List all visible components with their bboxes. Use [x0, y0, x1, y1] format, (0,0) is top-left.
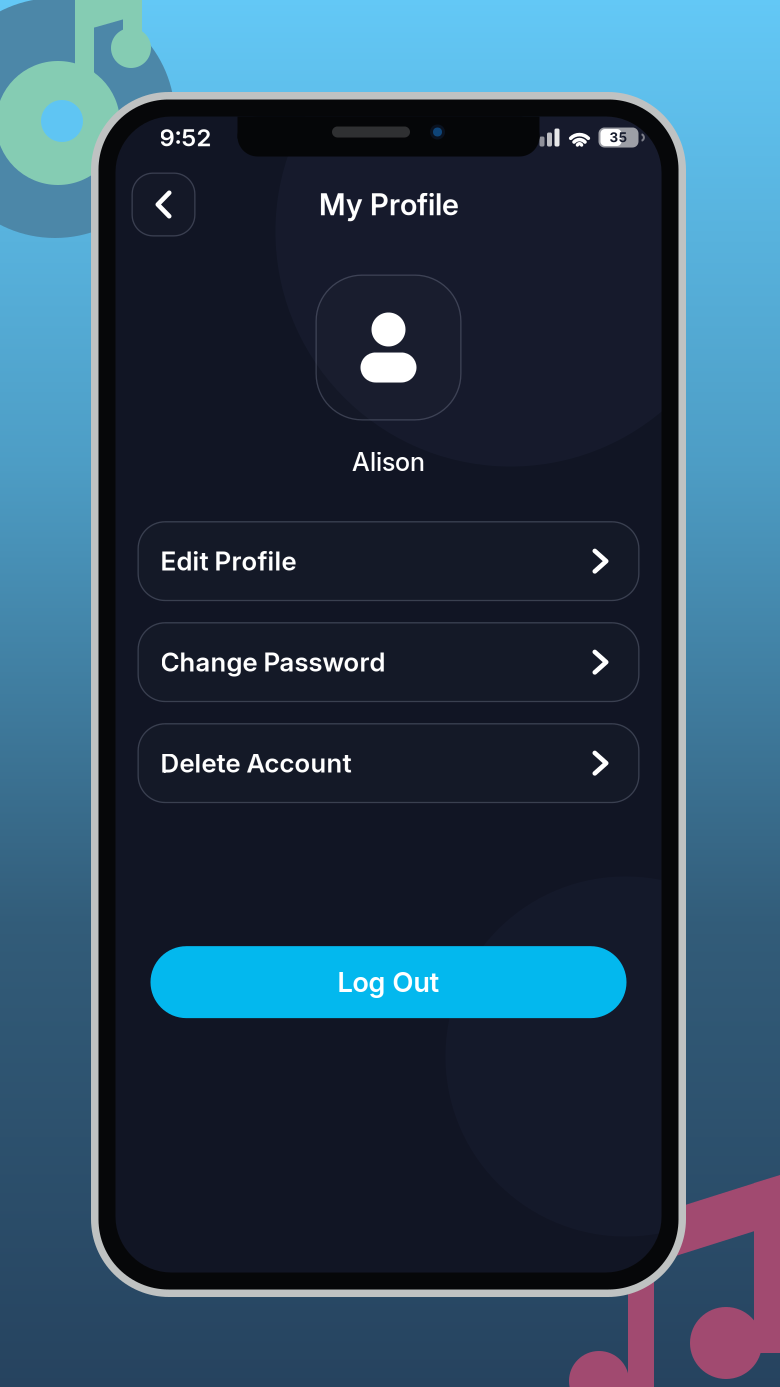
staticText: Change Password	[160, 646, 385, 678]
staticText: Log Out	[337, 966, 439, 999]
staticText: My Profile	[319, 187, 459, 222]
staticText: Alison	[352, 446, 425, 477]
staticText: 9:52	[159, 123, 211, 152]
staticText: Edit Profile	[160, 545, 296, 577]
button[interactable]: Delete Account	[137, 723, 639, 803]
button[interactable]: Log Out	[150, 946, 626, 1018]
staticText: 35	[609, 129, 627, 145]
button[interactable]: Change Password	[137, 622, 639, 702]
staticText: Delete Account	[160, 747, 351, 779]
button[interactable]: Edit Profile	[137, 521, 639, 601]
button[interactable]: Back	[131, 172, 195, 236]
